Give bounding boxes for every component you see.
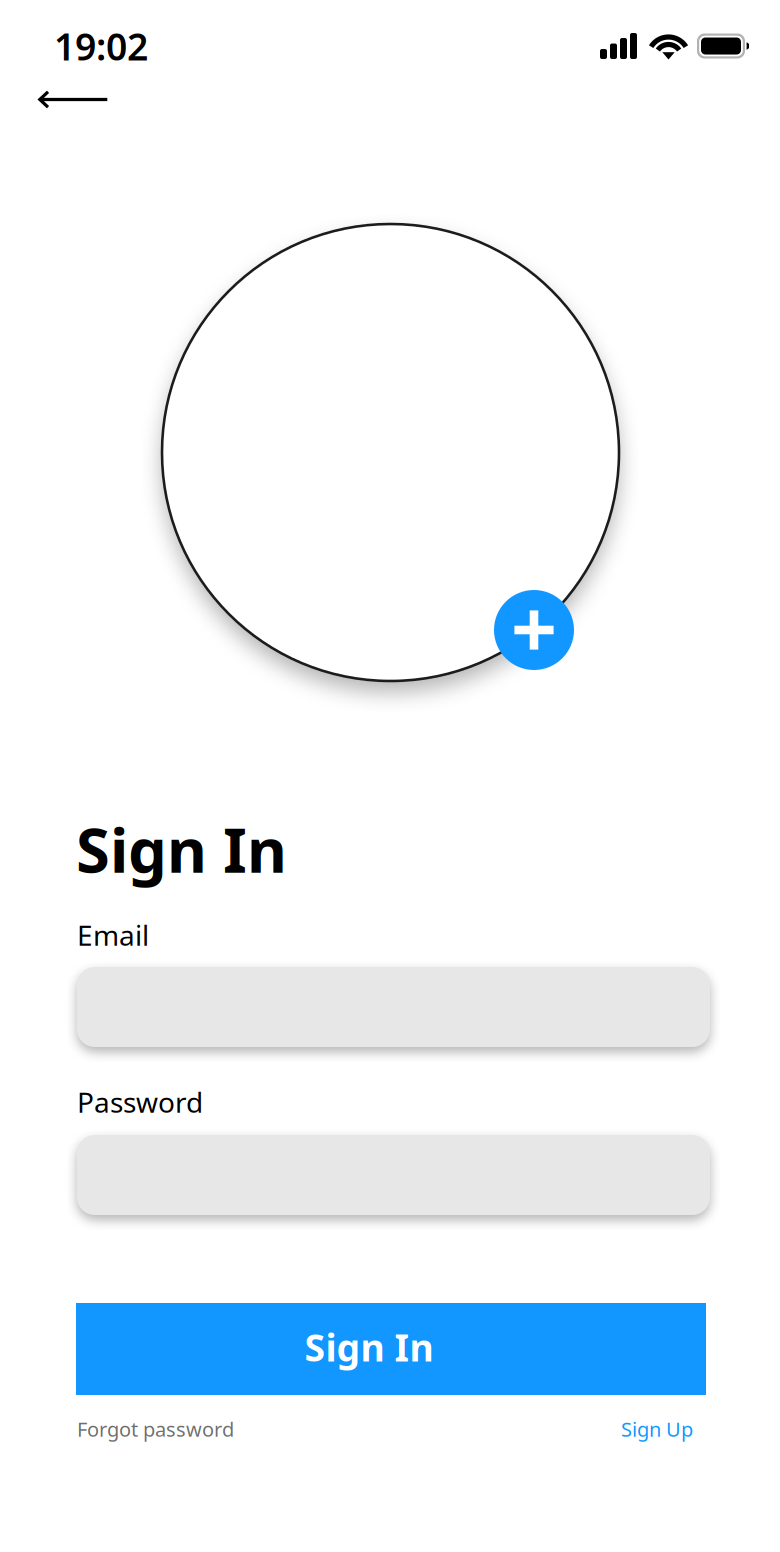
staticText: Email bbox=[77, 916, 149, 954]
staticText: Sign In bbox=[76, 808, 287, 890]
staticText: 19:02 bbox=[54, 21, 148, 71]
button[interactable]: Add profile photo bbox=[494, 590, 574, 670]
staticText: Forgot password bbox=[77, 1416, 234, 1442]
button[interactable]: Sign Up bbox=[621, 1416, 693, 1442]
staticText: Sign In bbox=[304, 1322, 433, 1372]
staticText: Sign Up bbox=[621, 1416, 693, 1442]
button[interactable]: Sign In bbox=[76, 1303, 706, 1395]
staticText: Password bbox=[77, 1083, 203, 1121]
button[interactable]: Back bbox=[0, 74, 131, 125]
button[interactable]: Forgot password bbox=[77, 1416, 234, 1442]
